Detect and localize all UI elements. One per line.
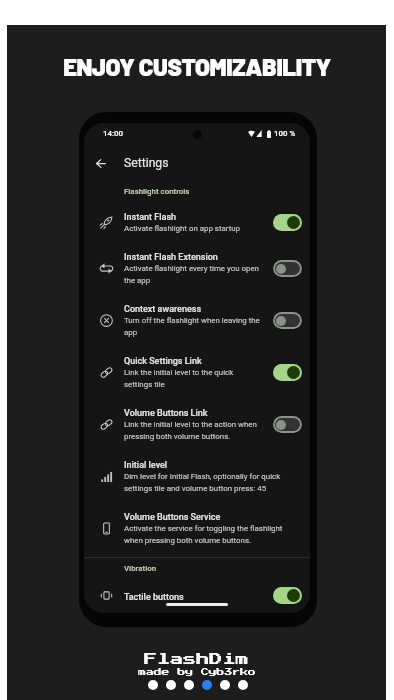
staticText: Instant Flash Extension [124,250,218,262]
staticText: ENJOY CUSTOMIZABILITY [63,52,331,81]
staticText: Volume Buttons Link [124,406,208,418]
staticText: Link the initial level to the action whe… [124,418,261,442]
staticText: Activate flashlight on app startup [124,222,241,234]
staticText: Instant Flash [124,210,177,222]
staticText: Context awareness [124,302,202,314]
button[interactable]: Context awareness [84,294,310,346]
button[interactable]: Initial level [84,450,310,502]
staticText: FlashDim [144,653,249,666]
button[interactable]: Volume Buttons Link [84,398,310,450]
staticText: Activate flashlight every time you open … [124,262,261,286]
staticText: Flashlight controls [124,187,190,196]
button[interactable]: Toggle [273,312,302,329]
button[interactable]: Instant Flash [84,202,310,242]
staticText: Settings [124,156,169,170]
button[interactable]: Quick Settings Link [84,346,310,398]
button[interactable]: Toggle [273,214,302,231]
staticText: Tactile buttons [124,590,184,602]
staticText: Turn off the flashlight when leaving the… [124,314,261,338]
staticText: 100 % [274,129,296,138]
staticText: Initial level [124,458,168,470]
staticText: made by Cyb3rko [138,668,256,676]
staticText: Activate the service for toggling the fl… [124,522,289,546]
staticText: 14:00 [103,129,124,138]
staticText: Link the initial level to the quick sett… [124,366,261,390]
button[interactable]: Tactile buttons [84,579,310,612]
staticText: Dim level for Initial Flash, optionally … [124,470,289,494]
button[interactable]: Toggle [273,416,302,433]
button[interactable]: Instant Flash Extension [84,242,310,294]
button[interactable]: Toggle [273,364,302,381]
button[interactable]: Toggle [273,587,302,604]
button[interactable]: Volume Buttons Service [84,502,310,554]
button[interactable]: Back [88,151,113,176]
button[interactable]: Toggle [273,260,302,277]
staticText: Quick Settings Link [124,354,202,366]
staticText: Vibration [124,564,157,573]
staticText: Volume Buttons Service [124,510,221,522]
